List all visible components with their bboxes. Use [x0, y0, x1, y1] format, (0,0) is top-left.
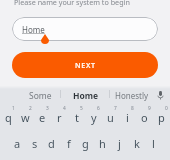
button[interactable]: 9 — [136, 105, 153, 132]
button[interactable]: 3 — [34, 105, 51, 132]
staticText: j — [118, 136, 121, 151]
staticText: o — [141, 110, 148, 125]
button[interactable]: 4 — [51, 105, 68, 132]
staticText: y — [91, 110, 97, 125]
staticText: i — [126, 110, 129, 125]
button[interactable]: Honestly — [109, 86, 155, 105]
button[interactable]: 7 — [102, 105, 119, 132]
button[interactable]: Some — [18, 86, 62, 105]
button[interactable]: j — [111, 132, 128, 159]
staticText: 5 — [80, 105, 83, 112]
staticText: u — [107, 110, 114, 125]
button[interactable]: 0 — [153, 105, 170, 132]
button[interactable]: s — [26, 132, 43, 159]
staticText: r — [57, 110, 62, 125]
staticText: g — [82, 136, 89, 151]
button[interactable]: k — [128, 132, 145, 159]
button[interactable]: NEXT — [12, 52, 158, 78]
button[interactable]: Home — [63, 86, 109, 105]
button[interactable]: f — [60, 132, 77, 159]
button[interactable]: g — [77, 132, 94, 159]
button[interactable]: Voice input — [153, 86, 168, 105]
staticText: Honestly — [115, 90, 149, 101]
button[interactable]: a — [9, 132, 26, 159]
staticText: 0 — [165, 105, 168, 112]
staticText: 1 — [12, 105, 15, 112]
button[interactable]: d — [43, 132, 60, 159]
staticText: f — [67, 136, 71, 151]
staticText: Home — [22, 24, 45, 35]
staticText: p — [158, 110, 165, 125]
button[interactable]: 8 — [119, 105, 136, 132]
staticText: 6 — [97, 105, 100, 112]
staticText: k — [134, 136, 140, 151]
staticText: 9 — [148, 105, 151, 112]
staticText: NEXT — [75, 60, 96, 70]
staticText: h — [99, 136, 106, 151]
staticText: s — [32, 136, 38, 151]
staticText: q — [5, 110, 12, 125]
staticText: Home — [73, 90, 99, 102]
staticText: e — [39, 110, 46, 125]
button[interactable]: h — [94, 132, 111, 159]
staticText: d — [48, 136, 55, 151]
button[interactable]: Home — [12, 17, 158, 41]
staticText: t — [75, 110, 79, 125]
staticText: w — [21, 110, 30, 125]
button[interactable]: 1 — [0, 105, 17, 132]
staticText: Some — [29, 90, 52, 102]
staticText: 3 — [46, 105, 49, 112]
staticText: 4 — [63, 105, 66, 112]
button[interactable]: 2 — [17, 105, 34, 132]
staticText: a — [14, 136, 21, 151]
staticText: 2 — [29, 105, 32, 112]
staticText: 7 — [114, 105, 117, 112]
staticText: 8 — [131, 105, 134, 112]
button[interactable]: l — [145, 132, 162, 159]
staticText: Please name your system to begin — [14, 0, 130, 7]
staticText: l — [152, 136, 155, 151]
button[interactable]: 6 — [85, 105, 102, 132]
button[interactable]: 5 — [68, 105, 85, 132]
